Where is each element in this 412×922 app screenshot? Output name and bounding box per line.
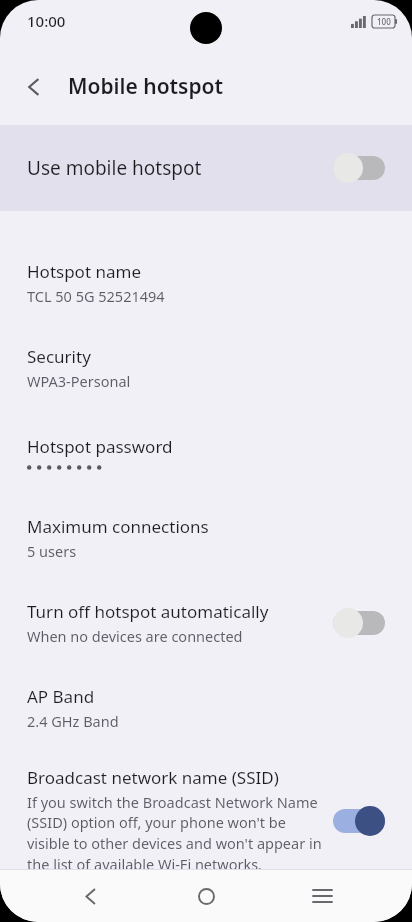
button[interactable]: Maximum connections [0,495,412,580]
button[interactable]: AP Band [0,665,412,750]
staticText: AP Band [27,685,95,708]
staticText: Broadcast network name (SSID) [27,766,279,789]
button[interactable]: Back [64,870,116,922]
staticText: Mobile hotspot [68,72,224,101]
staticText: Maximum connections [27,515,209,538]
button[interactable]: Turn off hotspot automatically [0,580,412,665]
staticText: 100 [377,16,391,27]
button[interactable]: Broadcast network name (SSID) [0,750,412,875]
staticText: Turn off hotspot automatically [27,600,269,623]
button[interactable]: Back [12,65,56,109]
button[interactable]: Use mobile hotspot [0,125,412,211]
staticText: WPA3-Personal [27,371,131,391]
staticText: TCL 50 5G 52521494 [27,286,165,306]
button[interactable]: Hotspot name [0,240,412,325]
staticText: 5 users [27,541,77,561]
button[interactable]: Recent apps [296,870,348,922]
staticText: 2.4 GHz Band [27,711,119,731]
button[interactable]: Hotspot password [0,410,412,495]
staticText: Hotspot password [27,435,173,458]
staticText: Use mobile hotspot [27,155,333,181]
staticText: 10:00 [27,11,66,31]
button[interactable]: Home [180,870,232,922]
staticText: When no devices are connected [27,626,243,646]
staticText: Hotspot name [27,260,141,283]
staticText: Security [27,345,91,368]
button[interactable]: Security [0,325,412,410]
staticText: If you switch the Broadcast Network Name… [27,792,323,875]
